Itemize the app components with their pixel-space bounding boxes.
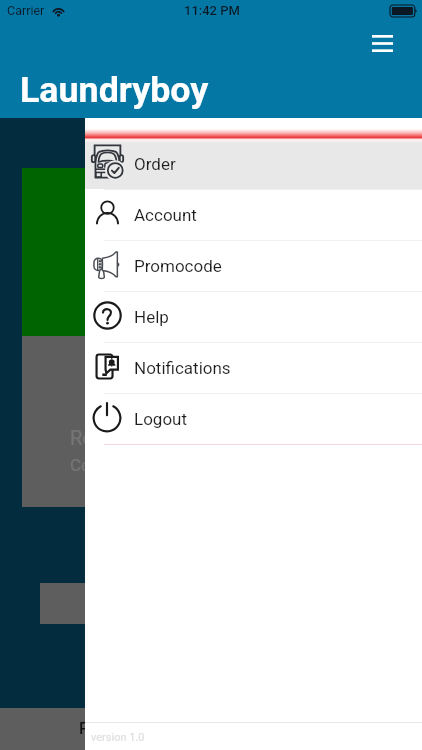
staticText: Account xyxy=(134,205,197,225)
staticText: Order xyxy=(134,154,176,174)
staticText: Carrier xyxy=(7,3,45,18)
staticText: Co xyxy=(70,455,91,475)
staticText: version 1.0 xyxy=(91,731,145,744)
staticText: Help xyxy=(134,307,169,327)
staticText: 11:42 PM xyxy=(184,3,240,18)
staticText: Pl xyxy=(79,719,94,738)
staticText: Notifications xyxy=(134,358,231,378)
button[interactable]: Account xyxy=(85,190,422,240)
button[interactable]: Open navigation menu xyxy=(359,20,405,66)
staticText: Re xyxy=(70,426,93,449)
button[interactable]: Order xyxy=(85,139,422,189)
button[interactable]: Help xyxy=(85,292,422,342)
staticText: Promocode xyxy=(134,256,222,276)
button[interactable]: Promocode xyxy=(85,241,422,291)
staticText: Laundryboy xyxy=(20,69,209,111)
staticText: Logout xyxy=(134,409,188,429)
button[interactable]: Notifications xyxy=(85,343,422,393)
button[interactable]: Logout xyxy=(85,394,422,444)
